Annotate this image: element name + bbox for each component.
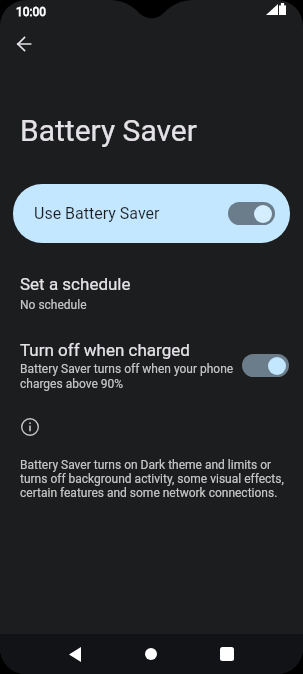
button[interactable]: Recent apps [205,634,249,674]
staticText: Set a schedule [20,274,131,294]
staticText: Battery Saver turns on Dark theme and li… [20,458,286,500]
staticText: Battery Saver [20,113,197,148]
button[interactable]: Turn off when charged [0,332,303,399]
button[interactable]: Back [53,634,97,674]
staticText: Battery Saver turns off when your phone … [20,362,235,391]
button[interactable]: On [242,354,289,377]
staticText: Turn off when charged [20,340,190,360]
button[interactable]: Use Battery Saver [13,184,290,243]
staticText: 10:00 [16,5,46,19]
button[interactable]: Home [129,634,173,674]
button[interactable]: Set a schedule [0,266,303,320]
button[interactable]: Off [228,202,275,225]
staticText: No schedule [20,298,87,312]
staticText: Use Battery Saver [34,204,160,223]
button[interactable]: Navigate up [2,22,46,66]
